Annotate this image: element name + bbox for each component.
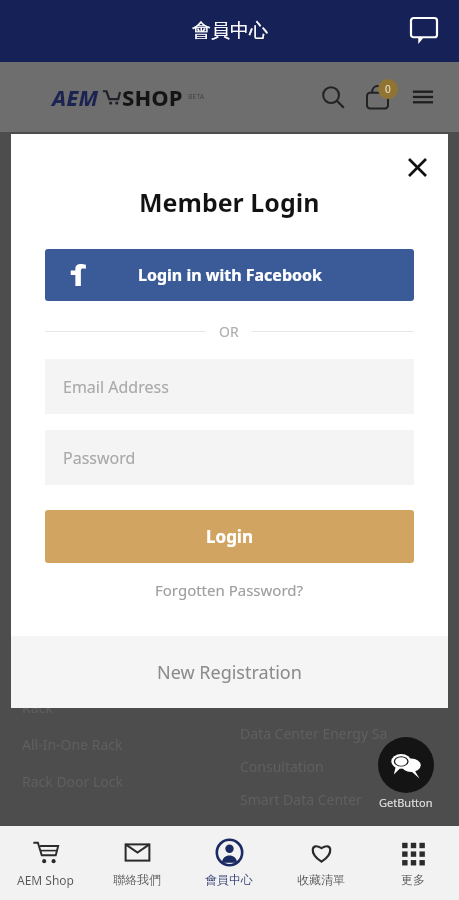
staticText: Data Center Energy Sa <box>240 724 388 743</box>
staticText: Password <box>63 447 136 469</box>
button[interactable]: Password <box>45 430 414 485</box>
button[interactable]: 收藏清單 <box>275 826 367 900</box>
staticText: 0 <box>385 82 391 96</box>
staticText: AEM Shop <box>17 872 74 888</box>
staticText: 收藏清單 <box>297 872 345 887</box>
button[interactable]: 會員中心 <box>183 826 275 900</box>
staticText: Member Login <box>139 185 320 219</box>
staticText: All-In-One Rack <box>22 735 123 754</box>
staticText: OR <box>219 322 239 341</box>
staticText: 會員中心 <box>205 872 253 887</box>
staticText: Email Address <box>63 376 169 398</box>
button[interactable]: Email Address <box>45 359 414 414</box>
button[interactable]: Login <box>45 510 414 563</box>
staticText: 會員中心 <box>192 19 268 43</box>
staticText: BETA <box>188 92 205 102</box>
button[interactable]: Menu <box>405 79 441 115</box>
staticText: GetButton <box>379 795 433 810</box>
staticText: Rack <box>22 698 53 717</box>
button[interactable]: Cart <box>359 77 399 117</box>
staticText: Forgotten Password? <box>155 580 304 600</box>
button[interactable]: GetButton chat <box>378 737 434 793</box>
staticText: New Registration <box>157 660 302 685</box>
staticText: Smart Data Center <box>240 790 362 809</box>
staticText: 更多 <box>401 872 425 887</box>
staticText: Login in with Facebook <box>138 264 322 286</box>
button[interactable]: 聯絡我們 <box>91 826 183 900</box>
button[interactable]: Search <box>315 79 351 115</box>
staticText: 聯絡我們 <box>113 872 161 887</box>
button[interactable]: AEM Shop <box>0 826 91 900</box>
staticText: SHOP <box>122 82 183 112</box>
staticText: Data Center Consultation <box>240 691 407 710</box>
button[interactable]: Forgotten Password? <box>155 580 304 600</box>
button[interactable]: 更多 <box>367 826 459 900</box>
button[interactable]: Close <box>398 148 436 186</box>
staticText: Consultation <box>240 757 324 776</box>
button[interactable]: Chat <box>405 12 443 50</box>
button[interactable]: New Registration <box>11 636 448 708</box>
staticText: Login <box>206 525 254 548</box>
staticText: AEM <box>52 82 99 112</box>
button[interactable]: Login in with Facebook <box>45 249 414 301</box>
staticText: Rack Door Lock <box>22 772 123 791</box>
